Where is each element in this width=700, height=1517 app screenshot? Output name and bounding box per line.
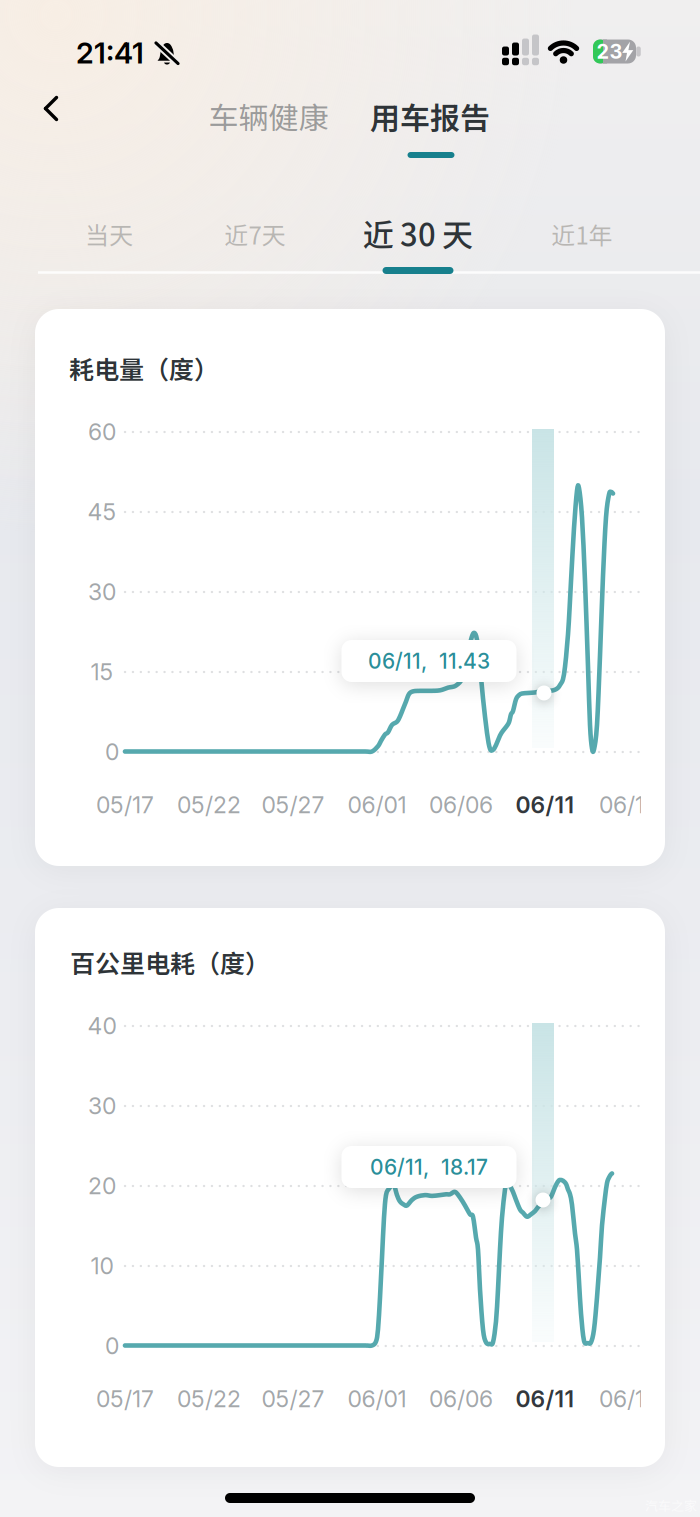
button[interactable]: 当天 <box>49 207 169 261</box>
button[interactable]: 用车报告 <box>345 86 515 146</box>
staticText: 0 <box>105 1332 119 1360</box>
staticText: 21:41 <box>76 35 144 71</box>
staticText: 45 <box>87 498 116 526</box>
staticText: 05/22 <box>177 791 241 819</box>
staticText: 05/17 <box>96 791 154 819</box>
staticText: 当天 <box>85 217 133 251</box>
staticText: 百公里电耗（度） <box>70 944 270 980</box>
staticText: 06/11 <box>515 1385 574 1413</box>
staticText: 06/01 <box>347 791 406 819</box>
staticText: 近7天 <box>224 217 285 251</box>
staticText: 30 <box>88 578 116 606</box>
staticText: 近 30 天 <box>363 211 473 255</box>
staticText: 20 <box>88 1172 116 1200</box>
staticText: 06/11 <box>515 791 574 819</box>
staticText: 06/11, 11.43 <box>368 648 490 674</box>
button[interactable]: 近 30 天 <box>338 205 498 261</box>
staticText: 10 <box>90 1252 113 1280</box>
button[interactable]: Back <box>42 95 86 139</box>
staticText: 40 <box>87 1012 116 1040</box>
staticText: 近1年 <box>551 217 612 251</box>
staticText: 06/06 <box>429 1385 493 1413</box>
button[interactable]: 近7天 <box>190 207 320 261</box>
staticText: 15 <box>90 658 113 686</box>
staticText: 车辆健康 <box>208 94 328 138</box>
button[interactable]: 近1年 <box>517 207 647 261</box>
staticText: 30 <box>88 1092 116 1120</box>
staticText: 06/16 <box>599 791 658 819</box>
button[interactable]: 车辆健康 <box>183 86 353 146</box>
staticText: 06/11, 18.17 <box>370 1154 488 1180</box>
staticText: 05/27 <box>261 1385 324 1413</box>
staticText: 耗电量（度） <box>69 350 219 386</box>
staticText: 用车报告 <box>370 94 490 138</box>
staticText: 06/01 <box>347 1385 406 1413</box>
staticText: 23 <box>596 39 622 64</box>
staticText: 0 <box>105 738 119 766</box>
staticText: 06/06 <box>429 791 493 819</box>
staticText: 06/16 <box>599 1385 658 1413</box>
staticText: 60 <box>88 418 116 446</box>
staticText: 05/22 <box>177 1385 241 1413</box>
staticText: 05/17 <box>96 1385 154 1413</box>
staticText: 05/27 <box>261 791 324 819</box>
